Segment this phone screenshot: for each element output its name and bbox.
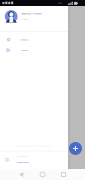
staticText: TEST COMPANY <box>0 143 85 169</box>
staticText: Logout <box>0 37 60 63</box>
button[interactable]: Settings <box>0 35 68 45</box>
staticText: App by Kodiak Apps - Version 1.1.1 <box>0 133 85 158</box>
staticText: 9:41 <box>39 0 80 16</box>
button[interactable]: Logout <box>0 45 68 55</box>
button[interactable]: Add <box>69 142 82 155</box>
staticText: Maurits Prinsloo <box>0 1 85 26</box>
staticText: Settings <box>0 27 65 52</box>
staticText: Change Company <box>0 149 85 175</box>
button[interactable]: Recent apps <box>61 172 66 177</box>
button[interactable]: Maurits Prinsloo <box>0 6 68 31</box>
button[interactable]: TEST COMPANY <box>0 152 68 168</box>
button[interactable]: Back <box>19 172 23 177</box>
staticText: Author <box>0 6 59 32</box>
button[interactable]: Home <box>40 172 45 177</box>
